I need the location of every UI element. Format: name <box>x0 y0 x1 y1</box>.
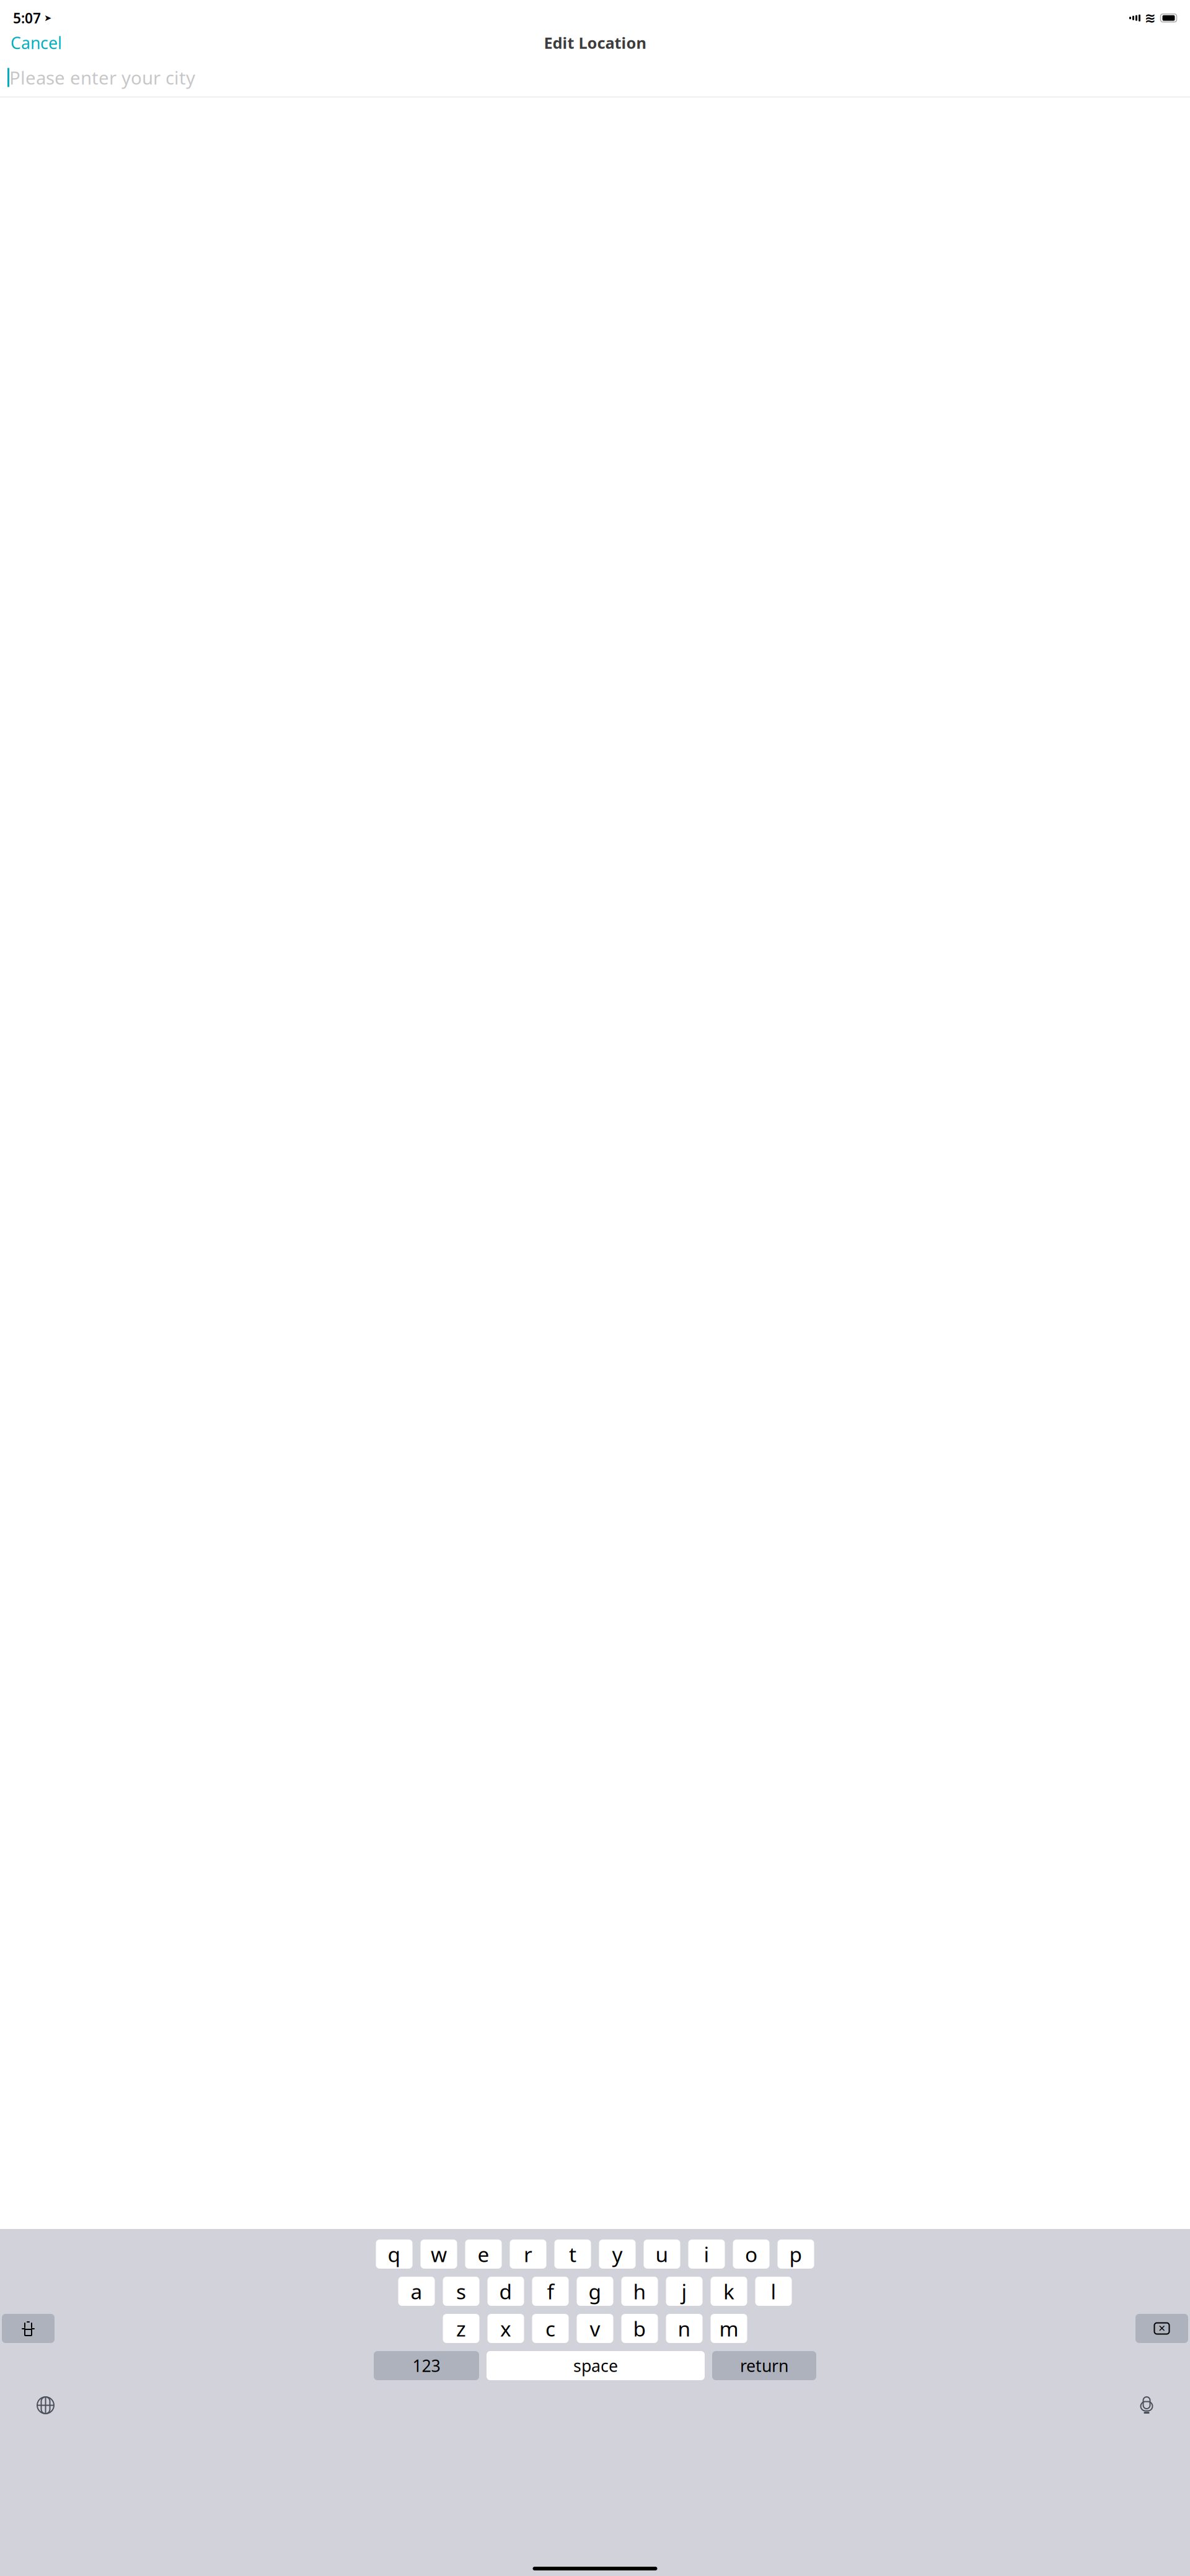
button[interactable]: c <box>532 2314 569 2343</box>
button[interactable]: t <box>554 2240 591 2269</box>
staticText: r <box>524 2240 532 2268</box>
staticText: g <box>588 2278 602 2305</box>
staticText: k <box>723 2278 734 2305</box>
staticText: t <box>569 2240 576 2268</box>
staticText: ≋ <box>1145 10 1156 25</box>
staticText: 123 <box>412 2355 440 2377</box>
button[interactable]: 123 <box>374 2351 479 2380</box>
staticText: f <box>547 2278 554 2305</box>
button[interactable]: d <box>487 2277 524 2306</box>
staticText: Please enter your city <box>9 65 195 90</box>
staticText: q <box>388 2240 401 2268</box>
button[interactable]: s <box>443 2277 479 2306</box>
button[interactable]: l <box>755 2277 792 2306</box>
staticText: o <box>745 2240 757 2268</box>
staticText: w <box>431 2240 447 2268</box>
button[interactable]: o <box>733 2240 769 2269</box>
staticText: p <box>789 2240 802 2268</box>
button[interactable]: g <box>577 2277 613 2306</box>
staticText: l <box>771 2278 776 2305</box>
button[interactable]: r <box>510 2240 546 2269</box>
button[interactable]: n <box>666 2314 703 2343</box>
staticText: b <box>633 2315 646 2342</box>
staticText: z <box>456 2315 466 2342</box>
staticText: y <box>612 2240 623 2268</box>
staticText: s <box>456 2278 466 2305</box>
button[interactable]: return <box>712 2351 816 2380</box>
staticText: e <box>478 2240 489 2268</box>
button[interactable]: w <box>421 2240 457 2269</box>
button[interactable]: f <box>532 2277 569 2306</box>
button[interactable]: k <box>711 2277 747 2306</box>
button[interactable]: z <box>443 2314 479 2343</box>
staticText: ➤ <box>44 13 51 23</box>
button[interactable]: Delete <box>1135 2314 1188 2343</box>
button[interactable]: Cancel <box>3 27 69 59</box>
staticText: d <box>499 2278 512 2305</box>
button[interactable]: i <box>688 2240 725 2269</box>
button[interactable]: x <box>487 2314 524 2343</box>
button[interactable]: m <box>711 2314 747 2343</box>
button[interactable]: Next keyboard <box>28 2388 63 2423</box>
button[interactable]: space <box>487 2351 705 2380</box>
button[interactable]: Shift <box>2 2314 55 2343</box>
staticText: h <box>633 2278 646 2305</box>
button[interactable]: v <box>577 2314 613 2343</box>
button[interactable]: y <box>599 2240 636 2269</box>
staticText: j <box>681 2278 687 2305</box>
staticText: i <box>704 2240 709 2268</box>
staticText: 5:07 <box>13 9 41 27</box>
button[interactable]: a <box>398 2277 435 2306</box>
staticText: m <box>719 2315 738 2342</box>
staticText: return <box>740 2355 788 2377</box>
button[interactable]: h <box>621 2277 658 2306</box>
staticText: v <box>590 2315 600 2342</box>
button[interactable]: e <box>465 2240 502 2269</box>
staticText: Cancel <box>11 32 62 54</box>
staticText: n <box>678 2315 691 2342</box>
staticText: x <box>500 2315 511 2342</box>
staticText: Edit Location <box>544 32 646 53</box>
button[interactable]: Dictation <box>1131 2390 1162 2420</box>
button[interactable]: j <box>666 2277 703 2306</box>
staticText: space <box>573 2355 618 2377</box>
staticText: ✕ <box>1158 2323 1166 2334</box>
button[interactable]: u <box>644 2240 680 2269</box>
button[interactable]: Please enter your city <box>0 58 1190 97</box>
button[interactable]: b <box>621 2314 658 2343</box>
button[interactable]: p <box>778 2240 814 2269</box>
staticText: c <box>545 2315 555 2342</box>
button[interactable]: q <box>376 2240 412 2269</box>
staticText: a <box>411 2278 422 2305</box>
staticText: u <box>655 2240 668 2268</box>
